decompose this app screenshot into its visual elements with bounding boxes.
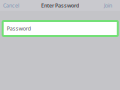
staticText: Password bbox=[7, 25, 31, 32]
button[interactable]: Join bbox=[104, 2, 120, 9]
button[interactable]: Password bbox=[0, 11, 120, 36]
button[interactable]: Cancel bbox=[0, 2, 19, 9]
staticText: Enter Password bbox=[41, 2, 79, 9]
staticText: Join bbox=[104, 2, 112, 9]
staticText: Cancel bbox=[3, 2, 19, 9]
